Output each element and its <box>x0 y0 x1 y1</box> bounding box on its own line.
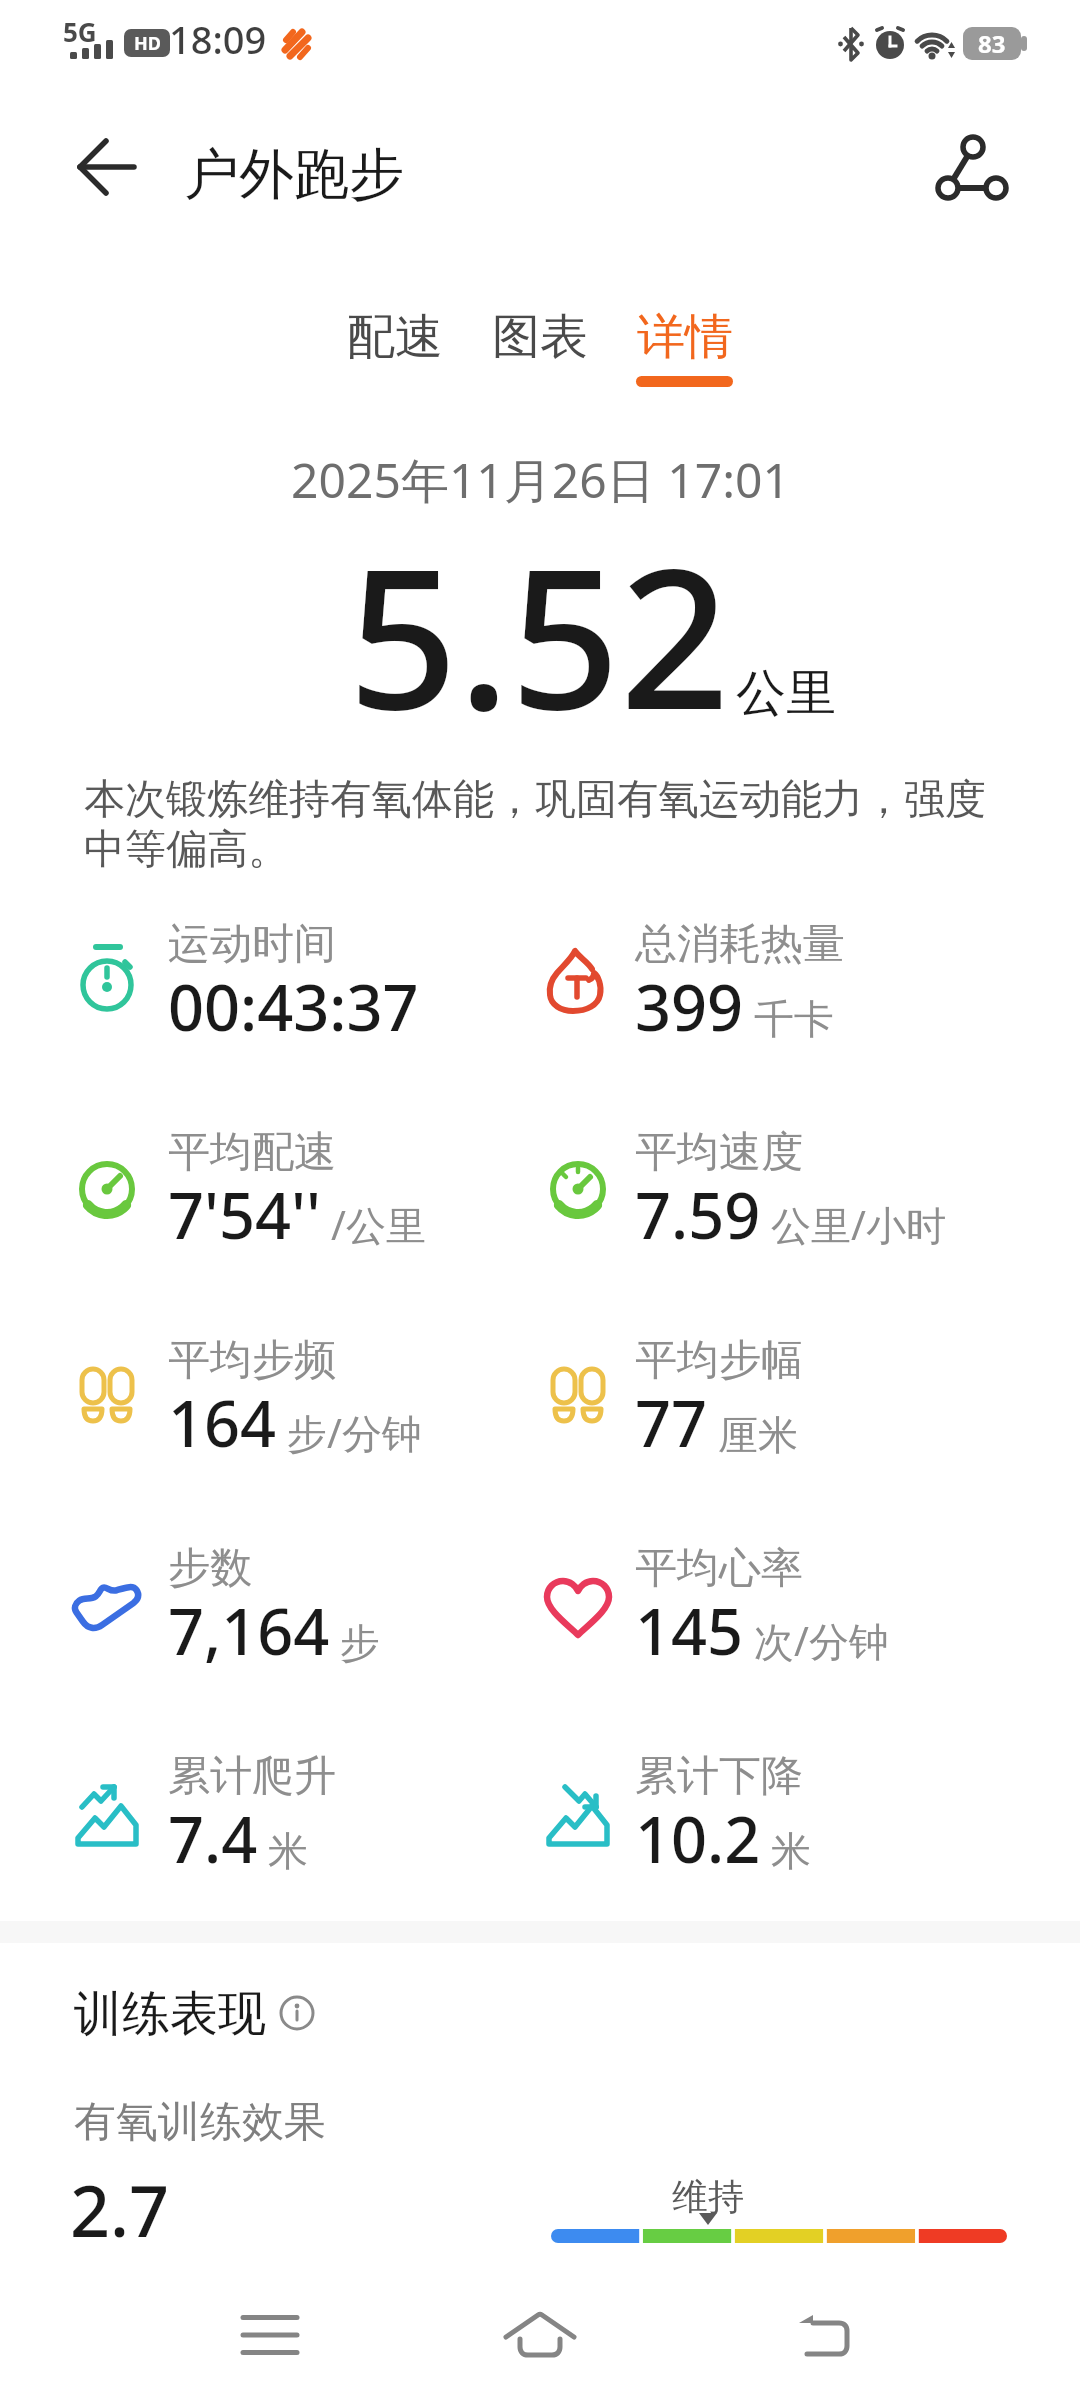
staticText: 77 <box>635 1380 708 1466</box>
staticText: 399 <box>635 964 744 1050</box>
staticText: 步/分钟 <box>287 1405 422 1460</box>
staticText: 83 <box>978 27 1006 60</box>
staticText: 145 <box>635 1588 744 1674</box>
button[interactable] <box>200 2290 340 2390</box>
staticText: 00:43:37 <box>168 964 419 1050</box>
staticText: 7,164 <box>168 1588 330 1674</box>
staticText: 米 <box>771 1826 811 1876</box>
staticText: 平均配速 <box>168 1126 336 1179</box>
staticText: 步 <box>340 1618 380 1668</box>
staticText: 2.7 <box>70 2162 170 2257</box>
staticText: 训练表现 <box>74 1984 266 2044</box>
staticText: 平均步幅 <box>635 1334 803 1387</box>
staticText: 7'54'' <box>168 1172 321 1258</box>
staticText: 次/分钟 <box>754 1613 889 1668</box>
staticText: 运动时间 <box>168 918 336 971</box>
staticText: 户外跑步 <box>184 140 404 209</box>
button[interactable]: 图表 <box>440 307 640 367</box>
staticText: 公里 <box>736 662 836 725</box>
staticText: /公里 <box>331 1197 426 1252</box>
button[interactable] <box>60 120 156 216</box>
staticText: 配速 <box>347 307 443 367</box>
button[interactable] <box>740 2290 880 2390</box>
staticText: 总消耗热量 <box>635 918 845 971</box>
button[interactable]: 配速 <box>295 307 495 367</box>
staticText: 米 <box>268 1826 308 1876</box>
staticText: 千卡 <box>754 994 834 1044</box>
button[interactable] <box>470 2290 610 2390</box>
staticText: 公里/小时 <box>771 1197 946 1252</box>
staticText: HD <box>134 31 161 56</box>
staticText: 7.59 <box>635 1172 761 1258</box>
staticText: 有氧训练效果 <box>74 2096 326 2149</box>
staticText: 5.52 <box>348 504 730 766</box>
staticText: 10.2 <box>635 1796 761 1882</box>
staticText: 2025年11月26日 17:01 <box>291 447 790 513</box>
staticText: 7.4 <box>168 1796 258 1882</box>
staticText: 5G <box>63 14 97 49</box>
staticText: 步数 <box>168 1542 252 1595</box>
staticText: 平均心率 <box>635 1542 803 1595</box>
staticText: 18:09 <box>169 13 267 65</box>
staticText: 平均步频 <box>168 1334 336 1387</box>
button[interactable] <box>278 1992 320 2034</box>
staticText: 本次锻炼维持有氧体能，巩固有氧运动能力，强度中等偏高。 <box>84 774 1004 876</box>
staticText: 图表 <box>492 307 588 367</box>
button[interactable]: 详情 <box>585 307 785 367</box>
staticText: 累计爬升 <box>168 1750 336 1803</box>
staticText: 164 <box>168 1380 277 1466</box>
button[interactable] <box>920 115 1020 215</box>
staticText: 平均速度 <box>635 1126 803 1179</box>
staticText: 维持 <box>672 2174 744 2219</box>
staticText: 累计下降 <box>635 1750 803 1803</box>
staticText: 厘米 <box>718 1410 798 1460</box>
staticText: 详情 <box>637 307 733 367</box>
